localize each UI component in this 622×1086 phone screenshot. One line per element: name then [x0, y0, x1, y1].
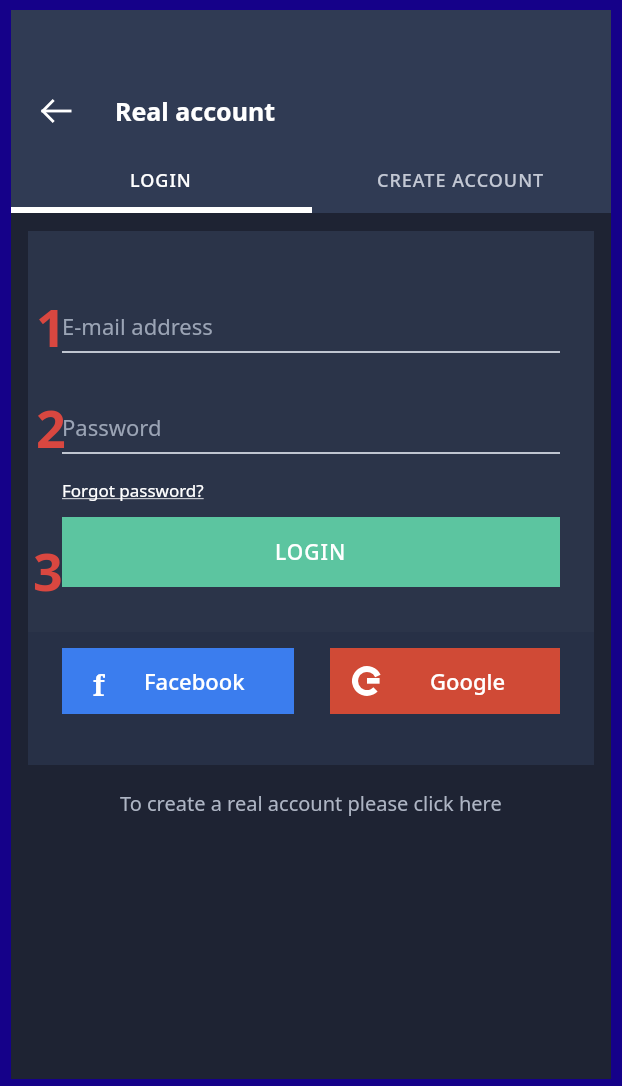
- staticText: LOGIN: [130, 168, 192, 193]
- button[interactable]: LOGIN: [11, 156, 311, 213]
- staticText: f: [93, 666, 105, 696]
- button[interactable]: LOGIN: [62, 517, 560, 587]
- button[interactable]: To create a real account please click he…: [11, 778, 611, 828]
- staticText: Password: [62, 412, 162, 442]
- staticText: 2: [36, 392, 66, 454]
- staticText: LOGIN: [275, 538, 347, 567]
- button[interactable]: Forgot password?: [62, 479, 204, 502]
- staticText: CREATE ACCOUNT: [377, 168, 545, 193]
- button[interactable]: CREATE ACCOUNT: [311, 156, 611, 213]
- staticText: Google: [430, 666, 506, 696]
- staticText: Forgot password?: [62, 479, 204, 502]
- staticText: 1: [36, 291, 66, 353]
- button[interactable]: f: [62, 648, 294, 714]
- staticText: Facebook: [144, 666, 245, 696]
- button[interactable]: Password: [62, 400, 560, 454]
- staticText: To create a real account please click he…: [120, 790, 502, 817]
- button[interactable]: Back: [28, 83, 84, 139]
- staticText: E-mail address: [62, 311, 213, 341]
- staticText: Real account: [115, 94, 276, 128]
- button[interactable]: E-mail address: [62, 299, 560, 353]
- staticText: 3: [33, 535, 63, 597]
- button[interactable]: Google: [330, 648, 560, 714]
